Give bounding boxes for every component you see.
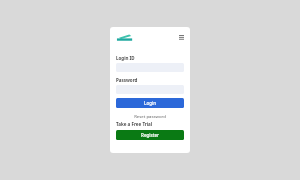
button[interactable]: Register	[116, 130, 184, 140]
button[interactable]: Reset password	[116, 112, 184, 119]
staticText: Password	[116, 77, 138, 83]
staticText: Login	[144, 100, 156, 106]
button[interactable]: Menu	[179, 35, 184, 40]
staticText: Login ID	[116, 55, 135, 61]
button[interactable]: Logo	[116, 33, 135, 42]
button[interactable]: Login	[116, 98, 184, 108]
staticText: Register	[141, 132, 159, 138]
staticText: Take a Free Trial	[116, 121, 153, 127]
staticText: Reset password	[134, 113, 166, 119]
